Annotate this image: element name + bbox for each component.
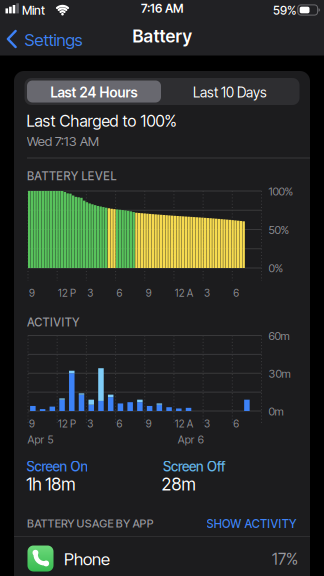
staticText: 12 P <box>58 418 76 430</box>
button[interactable]: Phone <box>14 536 310 576</box>
staticText: 3 <box>204 418 210 430</box>
staticText: 9 <box>146 418 152 430</box>
staticText: Settings <box>24 30 82 50</box>
staticText: 12 A <box>175 287 193 299</box>
staticText: SHOW ACTIVITY <box>207 517 296 531</box>
staticText: 59% <box>273 3 296 18</box>
staticText: 50% <box>268 223 289 237</box>
button[interactable]: Last 10 Days <box>163 80 297 102</box>
staticText: 12 A <box>175 418 193 430</box>
staticText: 7:16 AM <box>141 1 183 16</box>
staticText: 3 <box>87 418 93 430</box>
staticText: 0% <box>268 261 283 275</box>
staticText: Apr 6 <box>178 433 204 446</box>
staticText: Last 24 Hours <box>50 84 137 101</box>
staticText: 6 <box>233 287 239 299</box>
staticText: Mint <box>22 3 45 18</box>
staticText: Screen Off <box>163 458 225 475</box>
staticText: 0m <box>268 405 283 418</box>
staticText: Last Charged to 100% <box>26 111 176 131</box>
staticText: 12 P <box>58 287 76 299</box>
staticText: BATTERY LEVEL <box>27 169 117 183</box>
staticText: Phone <box>64 549 110 569</box>
staticText: Apr 5 <box>27 433 53 446</box>
staticText: 9 <box>146 287 152 299</box>
staticText: 6 <box>116 287 122 299</box>
staticText: 3 <box>87 287 93 299</box>
staticText: 1h 18m <box>26 474 75 495</box>
staticText: Screen On <box>26 458 88 475</box>
staticText: 100% <box>268 185 293 198</box>
staticText: 9 <box>29 418 35 430</box>
staticText: 3 <box>204 287 210 299</box>
staticText: 6 <box>233 418 239 430</box>
staticText: Wed 7:13 AM <box>27 133 99 149</box>
staticText: 60m <box>268 329 289 343</box>
staticText: Battery <box>132 25 191 47</box>
button[interactable]: Last 24 Hours <box>27 80 161 102</box>
staticText: 9 <box>29 287 35 299</box>
staticText: 30m <box>268 367 290 380</box>
staticText: 6 <box>116 418 122 430</box>
staticText: 28m <box>161 474 195 495</box>
button[interactable]: SHOW ACTIVITY <box>176 517 296 531</box>
button[interactable]: Back to Settings <box>0 0 324 576</box>
staticText: BATTERY USAGE BY APP <box>27 517 154 530</box>
staticText: 17% <box>272 549 298 568</box>
staticText: Last 10 Days <box>193 84 267 101</box>
staticText: ACTIVITY <box>27 315 79 329</box>
